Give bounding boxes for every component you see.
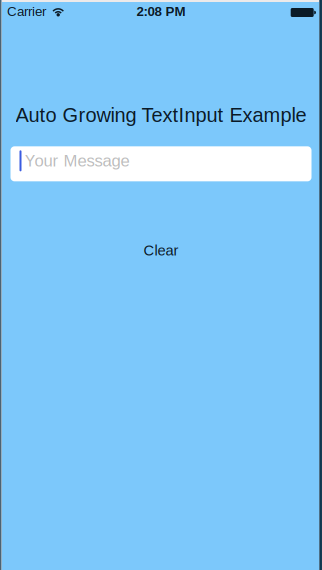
- button[interactable]: Clear: [131, 236, 190, 265]
- staticText: Carrier: [7, 4, 46, 19]
- staticText: Auto Growing TextInput Example: [15, 104, 306, 126]
- staticText: Clear: [143, 242, 178, 259]
- staticText: Your Message: [24, 151, 129, 170]
- button[interactable]: Your Message: [10, 146, 311, 181]
- staticText: 2:08 PM: [136, 4, 185, 19]
